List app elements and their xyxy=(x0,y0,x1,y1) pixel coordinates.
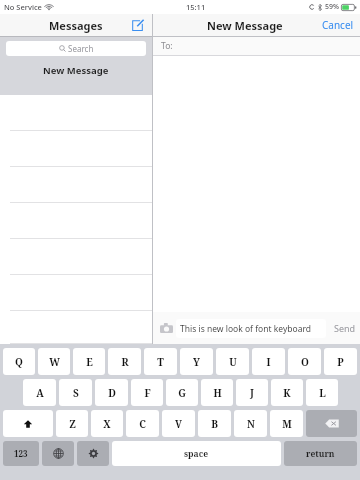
staticText: Search xyxy=(68,43,94,54)
staticText: This is new look of font keyboard xyxy=(180,323,312,335)
button[interactable]: U xyxy=(216,348,249,375)
staticText: B xyxy=(211,417,218,431)
staticText: H xyxy=(213,386,222,400)
staticText: Z xyxy=(69,417,76,431)
staticText: J xyxy=(250,386,254,400)
button[interactable]: L xyxy=(306,379,338,406)
button[interactable]: M xyxy=(270,410,303,437)
staticText: Messages xyxy=(49,18,103,33)
button[interactable] xyxy=(0,131,152,167)
staticText: C xyxy=(139,417,146,431)
staticText: P xyxy=(337,355,344,369)
staticText: T xyxy=(157,355,164,369)
button[interactable] xyxy=(0,311,152,344)
staticText: R xyxy=(121,355,129,369)
button[interactable]: T xyxy=(144,348,177,375)
staticText: No Service xyxy=(4,2,42,12)
button[interactable]: K xyxy=(271,379,303,406)
button[interactable]: O xyxy=(288,348,321,375)
button[interactable]: Take photo xyxy=(157,319,175,337)
staticText: L xyxy=(319,386,326,400)
staticText: return xyxy=(306,448,335,460)
staticText: O xyxy=(301,355,309,369)
button[interactable]: F xyxy=(131,379,163,406)
button[interactable]: J xyxy=(236,379,268,406)
staticText: 59% xyxy=(325,2,339,12)
staticText: K xyxy=(283,386,291,400)
button[interactable]: R xyxy=(108,348,141,375)
staticText: Q xyxy=(15,355,23,369)
button[interactable]: Y xyxy=(180,348,213,375)
staticText: M xyxy=(282,417,292,431)
staticText: V xyxy=(175,417,182,431)
staticText: N xyxy=(247,417,255,431)
button[interactable]: Keyboard settings xyxy=(77,441,109,466)
button[interactable] xyxy=(0,95,152,131)
staticText: U xyxy=(229,355,237,369)
button[interactable]: Backspace xyxy=(306,410,357,437)
button[interactable]: A xyxy=(23,379,56,406)
button[interactable]: B xyxy=(198,410,231,437)
button[interactable]: V xyxy=(162,410,195,437)
staticText: New Message xyxy=(207,18,283,33)
staticText: 15:11 xyxy=(186,2,206,12)
button[interactable]: Search xyxy=(6,41,146,56)
button[interactable]: Z xyxy=(56,410,88,437)
button[interactable]: S xyxy=(59,379,92,406)
staticText: 123 xyxy=(14,448,28,459)
staticText: New Message xyxy=(43,64,109,77)
staticText: A xyxy=(36,386,44,400)
button[interactable]: Q xyxy=(3,348,35,375)
button[interactable]: G xyxy=(166,379,198,406)
button[interactable]: H xyxy=(201,379,233,406)
button[interactable]: W xyxy=(38,348,70,375)
button[interactable]: I xyxy=(252,348,285,375)
button[interactable]: return xyxy=(284,441,357,466)
button[interactable]: New Message xyxy=(0,59,152,95)
button[interactable] xyxy=(0,203,152,239)
button[interactable]: Cancel xyxy=(322,18,354,32)
staticText: E xyxy=(86,355,93,369)
button[interactable]: Send xyxy=(334,322,356,334)
staticText: X xyxy=(103,417,111,431)
staticText: space xyxy=(184,448,209,460)
button[interactable]: N xyxy=(234,410,267,437)
button[interactable] xyxy=(0,239,152,275)
button[interactable]: 123 xyxy=(3,441,39,466)
staticText: D xyxy=(108,386,116,400)
button[interactable]: Shift xyxy=(3,410,53,437)
button[interactable]: This is new look of font keyboard xyxy=(176,319,326,338)
button[interactable]: To: xyxy=(153,37,360,55)
button[interactable]: C xyxy=(126,410,159,437)
button[interactable]: E xyxy=(73,348,105,375)
staticText: Cancel xyxy=(322,18,354,32)
button[interactable] xyxy=(0,167,152,203)
staticText: Send xyxy=(334,322,356,334)
button[interactable] xyxy=(0,275,152,311)
button[interactable]: D xyxy=(95,379,128,406)
button[interactable]: Change keyboard language xyxy=(42,441,74,466)
button[interactable]: X xyxy=(91,410,123,437)
staticText: G xyxy=(178,386,186,400)
staticText: Y xyxy=(193,355,200,369)
staticText: To: xyxy=(161,40,173,52)
staticText: I xyxy=(266,355,271,369)
button[interactable]: P xyxy=(324,348,357,375)
staticText: S xyxy=(73,386,79,400)
staticText: W xyxy=(49,355,60,369)
button[interactable]: Compose new message xyxy=(129,17,145,33)
button[interactable]: space xyxy=(112,441,281,466)
staticText: F xyxy=(144,386,151,400)
